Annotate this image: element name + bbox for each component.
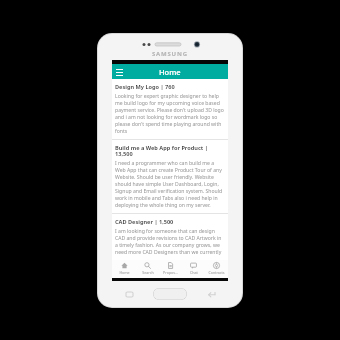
staticText: Build me a Web App for Product | 13,500	[115, 144, 225, 158]
staticText: I need a programmer who can build me a W…	[115, 160, 225, 209]
staticText: Search	[142, 270, 154, 275]
button[interactable]: Back	[204, 287, 218, 301]
staticText: I am looking for someone that can design…	[115, 228, 225, 256]
button[interactable]: Build me a Web App for Product | 13,500	[112, 140, 228, 213]
staticText: Home	[119, 270, 130, 275]
staticText: Design My Logo | 760	[115, 83, 175, 91]
button[interactable]: Propos...	[159, 260, 182, 278]
staticText: SAMSUNG	[152, 50, 188, 58]
staticText: Contracts	[208, 270, 225, 275]
staticText: Propos...	[163, 270, 178, 275]
button[interactable]: Contracts	[205, 260, 228, 278]
button[interactable]: Chat	[182, 260, 205, 278]
staticText: Chat	[190, 270, 198, 275]
button[interactable]: CAD Designer | 1,500	[112, 214, 228, 260]
button[interactable]: Open navigation menu	[112, 64, 127, 79]
button[interactable]: Design My Logo | 760	[112, 79, 228, 139]
button[interactable]: Home	[112, 260, 136, 278]
button[interactable]: Recent apps	[122, 287, 136, 301]
staticText: CAD Designer | 1,500	[115, 218, 174, 226]
button[interactable]: Search	[136, 260, 159, 278]
staticText: Home	[159, 67, 181, 77]
button[interactable]: Home button	[153, 288, 187, 300]
staticText: Looking for expert graphic designer to h…	[115, 93, 225, 135]
